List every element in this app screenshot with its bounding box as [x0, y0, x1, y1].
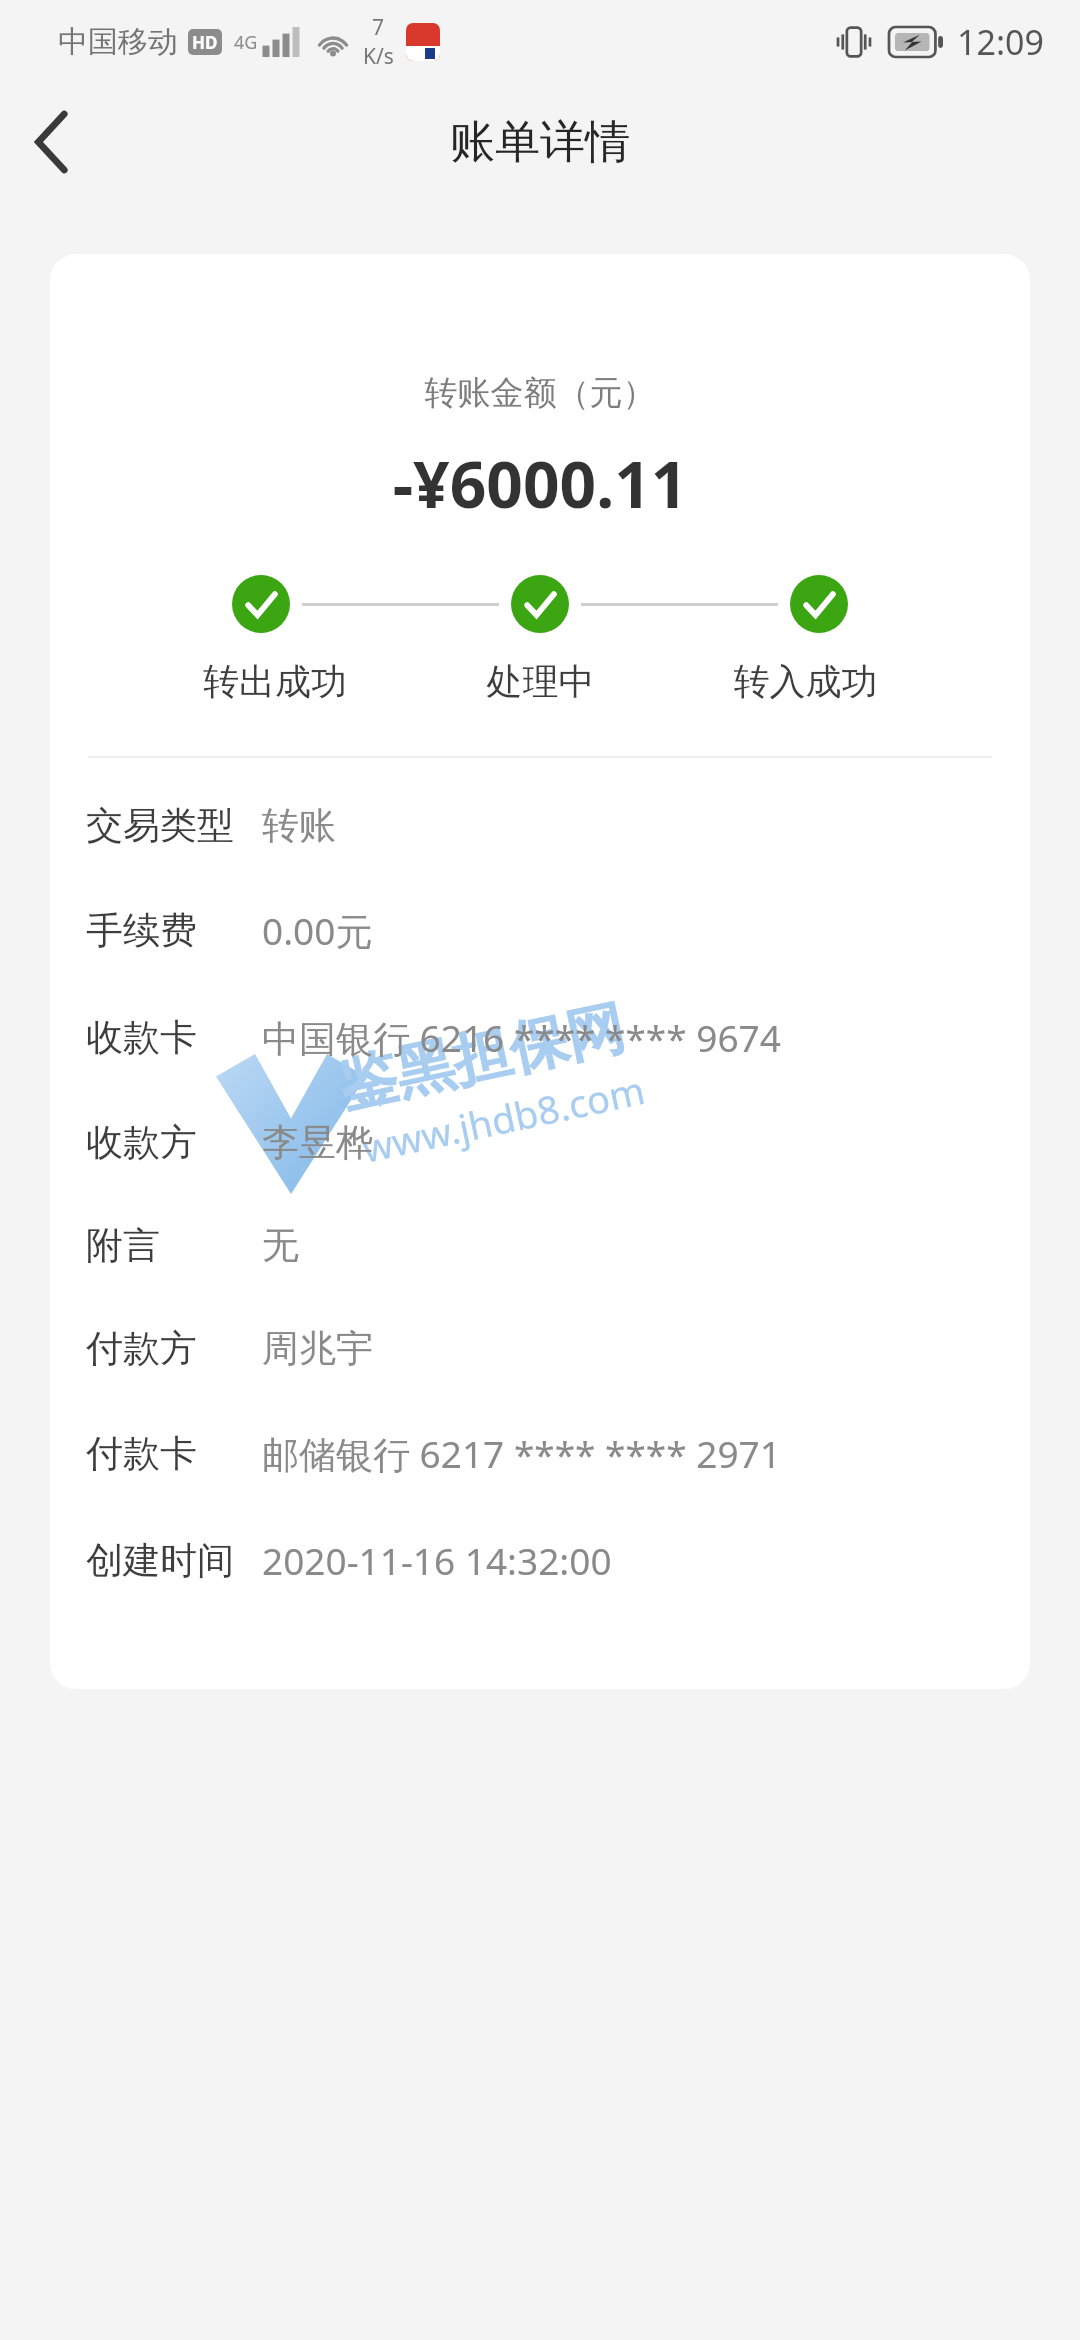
button[interactable]: 手续费: [50, 905, 1030, 956]
staticText: 处理中: [408, 659, 673, 704]
staticText: 李昱桦: [262, 1119, 373, 1166]
button[interactable]: 付款卡: [50, 1428, 1030, 1479]
staticText: 收款卡: [86, 1014, 262, 1061]
staticText: 账单详情: [450, 114, 630, 171]
staticText: 转入成功: [673, 659, 938, 704]
staticText: 4G: [234, 30, 258, 55]
staticText: 创建时间: [86, 1537, 262, 1584]
staticText: 附言: [86, 1222, 262, 1269]
staticText: 邮储银行 6217 **** **** 2971: [262, 1428, 781, 1479]
staticText: 中国银行 6216 **** **** 9674: [262, 1012, 781, 1063]
button[interactable]: Back: [0, 90, 104, 194]
staticText: 12:09: [957, 19, 1044, 65]
staticText: 转出成功: [142, 659, 408, 704]
staticText: 鉴黑担保网: [332, 991, 631, 1123]
staticText: K/s: [363, 42, 394, 71]
staticText: 转账: [262, 802, 336, 849]
staticText: 付款方: [86, 1325, 262, 1372]
staticText: 手续费: [86, 907, 262, 954]
staticText: 中国移动: [58, 23, 178, 61]
button[interactable]: 交易类型: [50, 802, 1030, 849]
staticText: 无: [262, 1222, 299, 1269]
staticText: 2020-11-16 14:32:00: [262, 1535, 612, 1585]
staticText: 0.00元: [262, 905, 373, 956]
staticText: 转账金额（元）: [50, 372, 1030, 414]
button[interactable]: 付款方: [50, 1325, 1030, 1372]
staticText: 付款卡: [86, 1430, 262, 1477]
staticText: -¥6000.11: [50, 440, 1030, 527]
staticText: 7: [372, 13, 385, 42]
button[interactable]: 创建时间: [50, 1535, 1030, 1585]
button[interactable]: 收款方: [50, 1119, 1030, 1166]
button[interactable]: 附言: [50, 1222, 1030, 1269]
staticText: HD: [192, 31, 218, 54]
staticText: 周兆宇: [262, 1325, 373, 1372]
staticText: 收款方: [86, 1119, 262, 1166]
staticText: 交易类型: [86, 802, 262, 849]
staticText: www.jhdb8.com: [357, 1063, 649, 1174]
button[interactable]: 收款卡: [50, 1012, 1030, 1063]
